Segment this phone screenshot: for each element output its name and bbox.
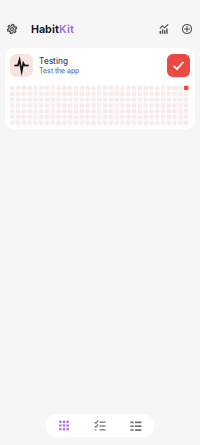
button[interactable]: Checklist view xyxy=(82,414,118,437)
staticText: Kit xyxy=(59,22,74,35)
button[interactable]: Add habit xyxy=(175,17,199,41)
button[interactable]: Grid view xyxy=(46,414,82,437)
button[interactable]: Mark Testing complete xyxy=(167,54,190,77)
button[interactable]: List view xyxy=(118,414,154,437)
staticText: Testing xyxy=(39,56,68,66)
button[interactable]: Testing xyxy=(5,48,195,129)
staticText: Habit xyxy=(31,22,59,35)
button[interactable]: Statistics xyxy=(153,17,175,41)
button[interactable]: Settings xyxy=(0,17,24,41)
staticText: Test the app xyxy=(39,67,79,75)
